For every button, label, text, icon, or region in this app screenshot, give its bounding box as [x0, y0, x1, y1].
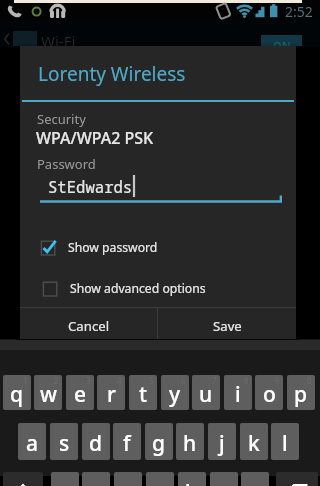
staticText: Cancel: [68, 317, 110, 335]
button[interactable]: l: [271, 423, 299, 460]
staticText: Save: [213, 317, 242, 335]
button[interactable]: 3: [66, 375, 94, 410]
staticText: 7: [212, 375, 217, 386]
staticText: u: [199, 380, 213, 409]
button[interactable]: k: [240, 423, 268, 460]
staticText: Password: [37, 155, 96, 173]
button[interactable]: d: [82, 423, 110, 460]
button[interactable]: h: [176, 423, 204, 460]
staticText: 9: [275, 375, 280, 386]
staticText: 2:52: [285, 2, 313, 21]
staticText: w: [40, 380, 57, 409]
button[interactable]: c: [114, 472, 142, 486]
button[interactable]: 4: [97, 375, 125, 410]
button[interactable]: 9: [255, 375, 283, 410]
staticText: y: [169, 380, 181, 409]
button[interactable]: Show advanced options: [42, 280, 206, 297]
button[interactable]: v: [146, 472, 174, 486]
staticText: r: [107, 380, 116, 409]
staticText: 0: [307, 375, 312, 386]
button[interactable]: a: [18, 423, 46, 460]
staticText: q: [10, 380, 24, 409]
staticText: Lorenty Wireless: [38, 61, 186, 87]
button[interactable]: n: [210, 472, 238, 486]
button[interactable]: m: [241, 472, 269, 486]
button[interactable]: z: [51, 472, 79, 486]
staticText: WPA/WPA2 PSK: [36, 127, 154, 149]
staticText: o: [263, 380, 276, 409]
staticText: 8: [244, 375, 249, 386]
staticText: a: [26, 429, 39, 458]
button[interactable]: Cancel: [20, 308, 157, 339]
button[interactable]: g: [145, 423, 173, 460]
staticText: l: [282, 429, 288, 458]
staticText: i: [235, 380, 241, 409]
staticText: e: [74, 380, 87, 409]
staticText: 3: [86, 375, 91, 386]
staticText: g: [152, 429, 166, 458]
staticText: f: [123, 429, 131, 458]
staticText: 2: [54, 375, 59, 386]
button[interactable]: Delete: [276, 472, 318, 486]
button[interactable]: x: [82, 472, 110, 486]
staticText: Show advanced options: [70, 280, 206, 297]
button[interactable]: 6: [161, 375, 189, 410]
staticText: ON: [273, 38, 291, 49]
staticText: b: [185, 478, 199, 486]
button[interactable]: f: [113, 423, 141, 460]
staticText: j: [219, 429, 225, 458]
button[interactable]: j: [208, 423, 236, 460]
button[interactable]: b: [178, 472, 206, 486]
staticText: d: [89, 429, 103, 458]
staticText: h: [183, 429, 197, 458]
button[interactable]: 1: [3, 375, 31, 410]
button[interactable]: 2: [34, 375, 62, 410]
staticText: Wi-Fi: [41, 31, 76, 51]
staticText: StEdwards: [48, 176, 133, 197]
button[interactable]: s: [50, 423, 78, 460]
staticText: Show password: [68, 239, 158, 256]
button[interactable]: 5: [129, 375, 157, 410]
staticText: p: [294, 380, 308, 409]
button[interactable]: 0: [287, 375, 315, 410]
staticText: 1: [23, 375, 28, 386]
button[interactable]: Save: [158, 308, 296, 339]
button[interactable]: Shift: [3, 472, 43, 486]
button[interactable]: 8: [224, 375, 252, 410]
staticText: k: [248, 429, 260, 458]
button[interactable]: ON: [261, 35, 302, 46]
staticText: Security: [37, 110, 86, 128]
button[interactable]: StEdwards: [40, 174, 282, 204]
staticText: s: [59, 429, 70, 458]
staticText: t: [139, 380, 148, 409]
button[interactable]: 7: [192, 375, 220, 410]
staticText: 5: [149, 375, 154, 386]
button[interactable]: Show password: [40, 239, 158, 256]
staticText: 4: [117, 375, 122, 386]
